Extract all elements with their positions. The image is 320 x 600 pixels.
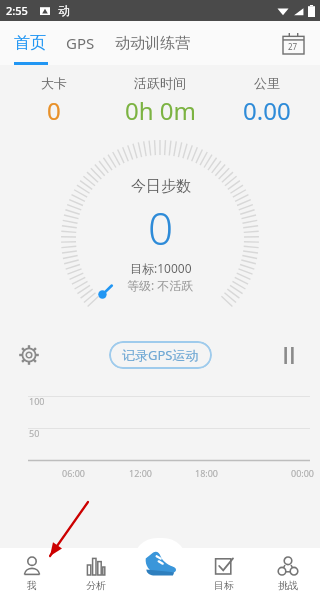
button[interactable]: Settings (12, 338, 46, 372)
button[interactable]: 首页 (14, 33, 46, 53)
staticText: 06:00 (62, 467, 129, 479)
staticText: 活跃时间 (134, 75, 186, 91)
staticText: 等级: 不活跃 (127, 277, 194, 293)
staticText: 公里 (254, 75, 280, 91)
staticText: 大卡 (41, 75, 67, 91)
staticText: 动动训练营 (115, 34, 190, 53)
staticText: 0.00 (243, 94, 291, 127)
staticText: 目标:10000 (130, 260, 192, 276)
staticText: 我 (27, 579, 37, 592)
button[interactable]: Start activity (133, 538, 187, 586)
staticText: 50 (29, 427, 40, 439)
staticText: 挑战 (278, 579, 298, 592)
button[interactable]: 挑战 (256, 548, 320, 600)
staticText: 动 (58, 3, 70, 18)
button[interactable]: 公里 (217, 75, 316, 127)
button[interactable]: Calendar (278, 28, 308, 58)
staticText: 2:55 (6, 3, 28, 18)
staticText: 0h 0m (125, 94, 196, 127)
button[interactable]: 大卡 (4, 75, 103, 127)
staticText: 100 (29, 395, 45, 407)
staticText: 0 (47, 94, 61, 127)
staticText: 27 (288, 41, 298, 52)
button[interactable]: GPS (66, 33, 95, 53)
staticText: 记录GPS运动 (122, 346, 199, 364)
button[interactable]: 活跃时间 (103, 75, 217, 127)
staticText: 目标 (214, 579, 234, 592)
staticText: GPS (66, 33, 95, 53)
button[interactable]: 分析 (64, 548, 128, 600)
button[interactable]: 记录GPS运动 (109, 341, 212, 369)
staticText: 今日步数 (131, 177, 191, 196)
button[interactable]: 动动训练营 (115, 34, 190, 53)
staticText: 首页 (14, 33, 46, 53)
button[interactable]: 目标 (192, 548, 256, 600)
staticText: 分析 (86, 579, 106, 592)
staticText: 0 (148, 198, 174, 258)
button[interactable]: Pause (272, 338, 306, 372)
button[interactable]: 我 (0, 548, 64, 600)
staticText: 00:00 (261, 467, 314, 479)
staticText: 18:00 (195, 467, 261, 479)
staticText: 12:00 (129, 467, 195, 479)
